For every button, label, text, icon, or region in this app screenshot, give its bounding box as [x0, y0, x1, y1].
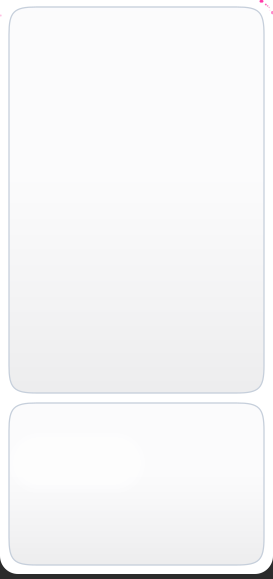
button[interactable]: Open card: [9, 7, 264, 393]
button[interactable]: Open details card: [9, 403, 264, 565]
